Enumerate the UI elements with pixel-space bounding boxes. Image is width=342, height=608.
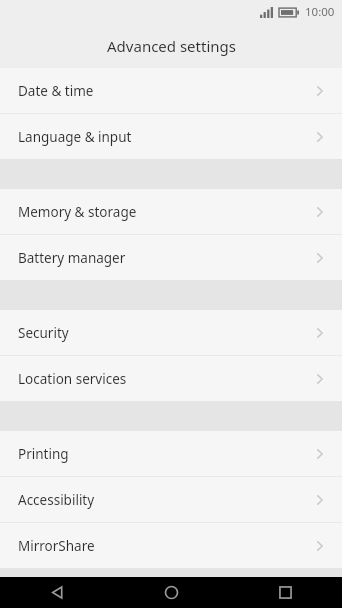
staticText: Memory & storage [18, 203, 137, 221]
staticText: Security [18, 324, 69, 342]
staticText: MirrorShare [18, 537, 95, 555]
button[interactable]: Date & time [0, 68, 342, 113]
staticText: 10:00 [305, 4, 335, 20]
staticText: Advanced settings [107, 36, 236, 56]
button[interactable]: Back [0, 577, 114, 608]
button[interactable]: Home [114, 577, 228, 608]
staticText: Accessibility [18, 491, 95, 509]
button[interactable]: Battery manager [0, 235, 342, 280]
button[interactable]: Location services [0, 356, 342, 401]
button[interactable]: Memory & storage [0, 189, 342, 234]
button[interactable]: MirrorShare [0, 523, 342, 568]
button[interactable]: Printing [0, 431, 342, 476]
button[interactable]: Accessibility [0, 477, 342, 522]
staticText: Battery manager [18, 249, 126, 267]
staticText: Printing [18, 445, 69, 463]
button[interactable]: Security [0, 310, 342, 355]
staticText: Date & time [18, 82, 94, 100]
staticText: Language & input [18, 128, 132, 146]
button[interactable]: Language & input [0, 114, 342, 159]
button[interactable]: Recent apps [228, 577, 342, 608]
staticText: Location services [18, 370, 127, 388]
